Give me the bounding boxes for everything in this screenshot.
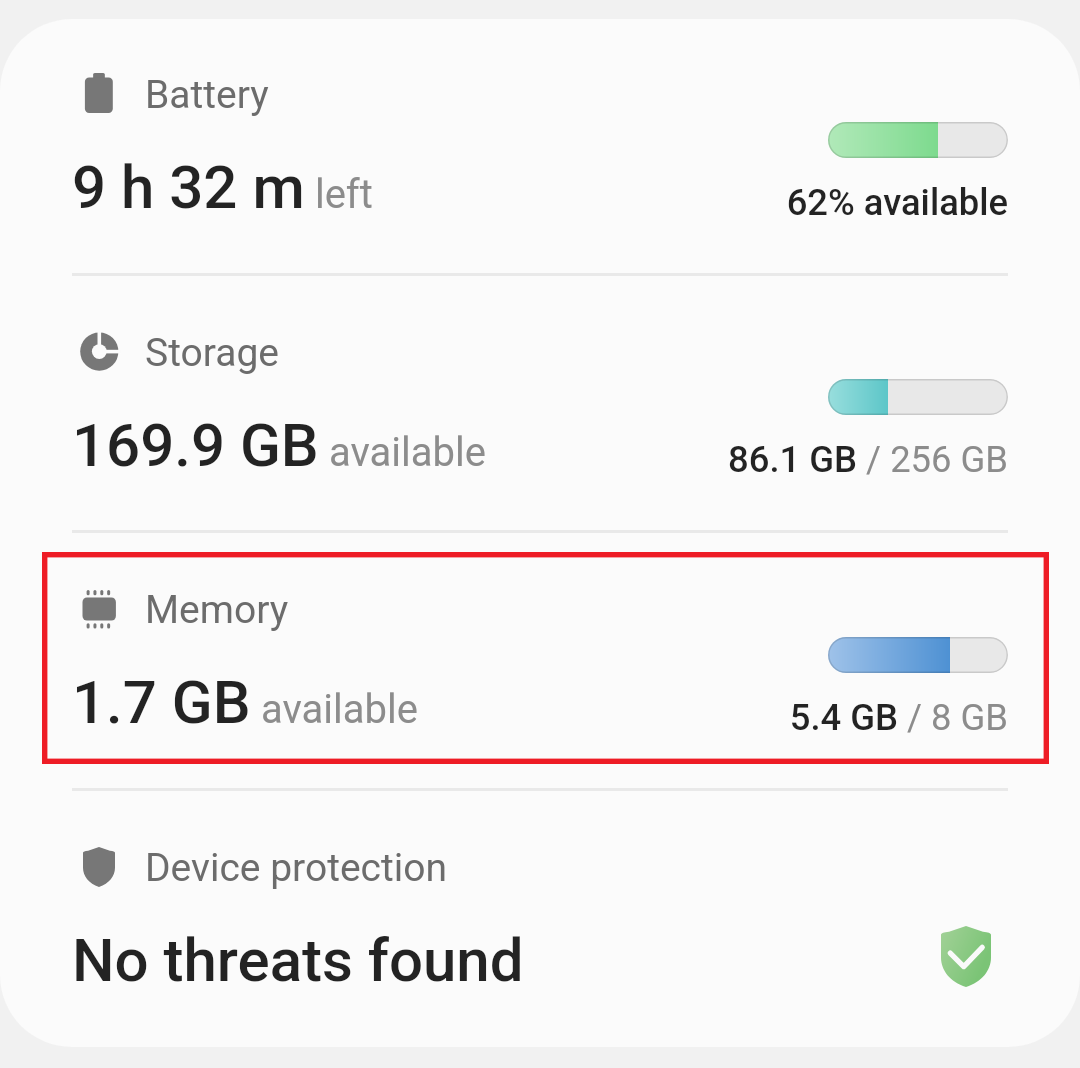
staticText: available — [319, 429, 486, 476]
other: No threats found — [941, 926, 991, 987]
staticText: 86.1 GB / 256 GB — [408, 438, 1008, 481]
button[interactable] — [0, 533, 1080, 791]
staticText: 9 h 32 m — [72, 152, 305, 222]
staticText: Storage — [145, 330, 280, 376]
button[interactable] — [0, 791, 1080, 1049]
staticText: 1.7 GB — [72, 667, 251, 737]
staticText: 62% available — [408, 181, 1008, 224]
staticText: Battery — [145, 72, 269, 118]
staticText: available — [251, 686, 418, 733]
staticText: No threats found — [72, 925, 524, 995]
staticText: left — [305, 171, 373, 218]
staticText: Device protection — [145, 845, 448, 891]
other: Device protection — [83, 847, 115, 887]
staticText: 5.4 GB / 8 GB — [408, 696, 1008, 739]
button[interactable] — [0, 276, 1080, 534]
staticText: Memory — [145, 587, 289, 633]
button[interactable] — [0, 18, 1080, 276]
other: Memory section highlighted — [42, 552, 1049, 764]
staticText: 169.9 GB — [72, 410, 319, 480]
